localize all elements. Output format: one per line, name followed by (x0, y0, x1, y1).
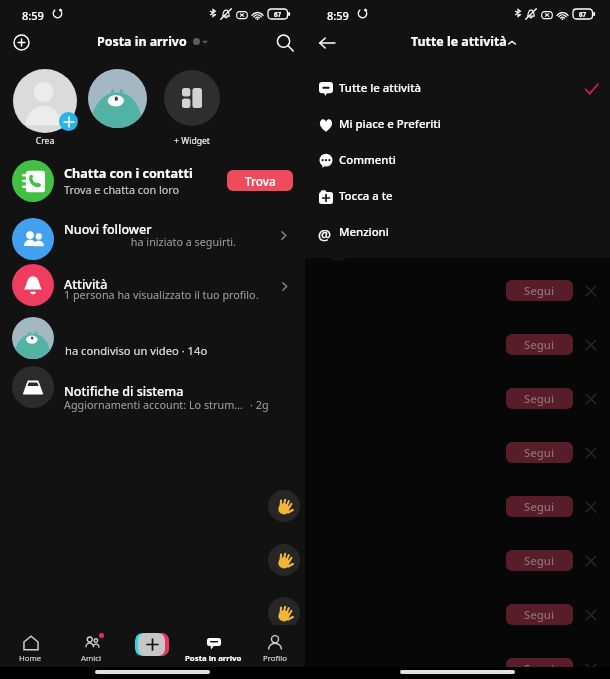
button[interactable]: Segui (506, 658, 573, 679)
staticText: Segui (524, 337, 555, 353)
button[interactable]: Saluta (268, 490, 300, 522)
staticText: Home (19, 653, 42, 664)
staticText: Menzioni (339, 224, 389, 240)
staticText: 67 (579, 10, 587, 18)
button[interactable]: Trova (227, 170, 293, 191)
button[interactable]: Attività (0, 264, 305, 318)
staticText: Segui (524, 553, 555, 569)
button[interactable]: Chatta con i contatti (0, 154, 305, 208)
button[interactable]: Aggiungi widget (164, 70, 220, 126)
button[interactable]: Crea post (135, 633, 169, 656)
button[interactable]: Mi piace e Preferiti (305, 108, 610, 144)
button[interactable]: Saluta (268, 544, 300, 576)
button[interactable]: Rimuovi (584, 554, 598, 568)
button[interactable]: Home (0, 625, 61, 663)
button[interactable]: Tocca a te (305, 180, 610, 216)
staticText: + Widget (164, 135, 220, 147)
staticText: Commenti (339, 152, 396, 168)
button[interactable]: Tutte le attività (305, 72, 610, 108)
button[interactable]: Segui (506, 604, 573, 625)
staticText: Amici (81, 653, 102, 664)
button[interactable]: Rimuovi (584, 608, 598, 622)
staticText: 67 (274, 10, 282, 18)
staticText: Segui (524, 445, 555, 461)
staticText: Trova e chatta con loro (64, 182, 180, 197)
staticText: Nuovi follower (64, 221, 152, 238)
staticText: Crea (24, 135, 66, 147)
button[interactable]: Notifiche di sistema (0, 366, 305, 420)
button[interactable]: Indietro (310, 26, 343, 59)
button[interactable]: Segui (506, 334, 573, 355)
button[interactable]: Rimuovi (584, 284, 598, 298)
button[interactable]: Profilo (244, 625, 305, 663)
staticText: Trova (245, 173, 276, 189)
staticText: Notifiche di sistema (64, 383, 184, 400)
button[interactable]: Rimuovi (584, 338, 598, 352)
staticText: Profilo (263, 653, 287, 664)
staticText: ha iniziato a seguirti. (64, 234, 236, 249)
staticText: 1 persona ha visualizzato il tuo profilo… (64, 287, 259, 302)
staticText: Mi piace e Preferiti (339, 116, 441, 132)
staticText: Segui (524, 607, 555, 623)
button[interactable]: Nuovi follower (0, 217, 305, 271)
staticText: Segui (524, 391, 555, 407)
staticText: Aggiornamenti account: Lo strum… (64, 397, 243, 412)
button[interactable]: Storia (88, 69, 147, 128)
button[interactable]: Rimuovi (584, 662, 598, 676)
staticText: Segui (524, 283, 555, 299)
staticText: Tocca a te (339, 188, 393, 204)
button[interactable]: @ (305, 216, 610, 252)
staticText: Posta in arrivo (185, 653, 242, 664)
staticText: Attività (64, 276, 108, 293)
staticText: Tutte le attività (339, 80, 422, 96)
button[interactable]: Segui (506, 280, 573, 301)
staticText: @ (318, 224, 332, 244)
staticText: 8:59 (327, 8, 349, 23)
staticText: 8:59 (22, 8, 44, 23)
staticText: Chatta con i contatti (64, 165, 193, 182)
staticText: Tutte le attività (411, 33, 507, 50)
button[interactable]: Segui (506, 442, 573, 463)
staticText: ha condiviso un video · 14o (65, 343, 208, 358)
button[interactable]: Rimuovi (584, 500, 598, 514)
button[interactable]: Posta in arrivo (183, 625, 244, 663)
button[interactable]: ha condiviso un video · 14o (0, 317, 305, 365)
staticText: Posta in arrivo (97, 33, 187, 50)
button[interactable]: Amici (61, 625, 122, 663)
button[interactable]: Segui (506, 550, 573, 571)
button[interactable]: Cerca (268, 26, 301, 59)
button[interactable]: Saluta (268, 597, 300, 629)
button[interactable]: Segui (506, 496, 573, 517)
button[interactable]: Rimuovi (584, 446, 598, 460)
staticText: Segui (524, 661, 555, 677)
staticText: Segui (524, 499, 555, 515)
button[interactable]: Crea (5, 26, 38, 59)
button[interactable]: Commenti (305, 144, 610, 180)
staticText: · 2g (250, 397, 269, 412)
button[interactable]: Rimuovi (584, 392, 598, 406)
button[interactable]: Crea storia (13, 69, 77, 133)
button[interactable]: Segui (506, 388, 573, 409)
